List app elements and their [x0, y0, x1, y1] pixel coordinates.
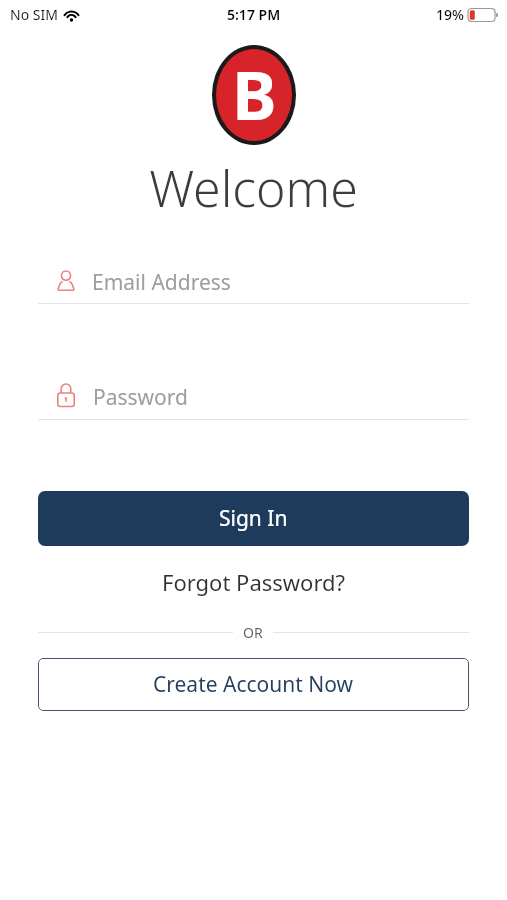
- staticText: Forgot Password?: [162, 567, 346, 597]
- staticText: B: [232, 48, 277, 139]
- staticText: 5:17 PM: [227, 5, 281, 24]
- staticText: Sign In: [219, 504, 288, 533]
- staticText: No SIM: [10, 5, 58, 24]
- button[interactable]: Create Account Now: [38, 658, 469, 711]
- button[interactable]: Password: [38, 380, 469, 420]
- staticText: Create Account Now: [153, 670, 354, 699]
- button[interactable]: Email Address: [38, 262, 469, 304]
- staticText: Email Address: [92, 268, 231, 297]
- staticText: 19%: [436, 5, 464, 24]
- button[interactable]: Sign In: [38, 491, 469, 546]
- staticText: Welcome: [149, 154, 358, 222]
- staticText: OR: [243, 623, 263, 642]
- button[interactable]: Forgot Password?: [158, 563, 350, 601]
- staticText: Password: [93, 383, 188, 412]
